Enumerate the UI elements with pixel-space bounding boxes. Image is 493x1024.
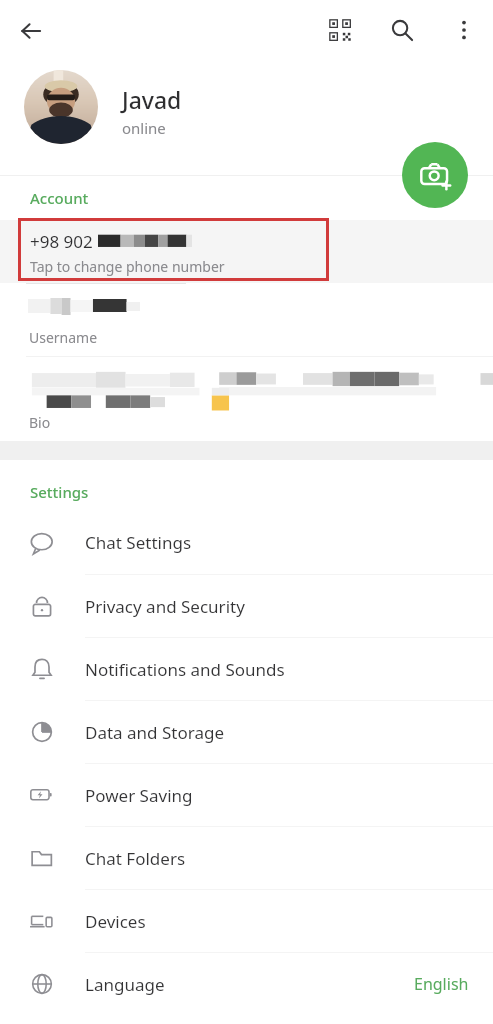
button[interactable]: Data and Storage bbox=[0, 701, 493, 763]
button[interactable]: Chat Folders bbox=[0, 827, 493, 889]
staticText: Notifications and Sounds bbox=[85, 658, 285, 681]
staticText: Chat Folders bbox=[85, 847, 186, 870]
button[interactable]: Devices bbox=[0, 890, 493, 952]
staticText: Tap to change phone number bbox=[30, 257, 225, 276]
button[interactable]: Search bbox=[380, 8, 424, 52]
staticText: Language bbox=[85, 973, 165, 996]
button[interactable]: Privacy and Security bbox=[0, 575, 493, 637]
button[interactable]: Username bbox=[0, 284, 493, 356]
button[interactable]: QR code bbox=[318, 8, 362, 52]
staticText: online bbox=[122, 118, 166, 138]
staticText: Bio bbox=[29, 413, 51, 432]
staticText: Username bbox=[29, 328, 98, 347]
staticText: Devices bbox=[85, 910, 146, 933]
staticText: Account bbox=[30, 188, 89, 208]
button[interactable]: Bio bbox=[0, 357, 493, 441]
button[interactable]: Back bbox=[10, 10, 52, 52]
staticText: Data and Storage bbox=[85, 721, 224, 744]
button[interactable]: Chat Settings bbox=[0, 511, 493, 574]
staticText: Javad bbox=[122, 84, 182, 115]
staticText: English bbox=[414, 973, 469, 995]
button[interactable]: Power Saving bbox=[0, 764, 493, 826]
button[interactable]: Set profile photo bbox=[402, 142, 468, 208]
staticText: +98 902 bbox=[30, 230, 98, 253]
button[interactable]: Notifications and Sounds bbox=[0, 638, 493, 700]
button[interactable]: Profile photo bbox=[24, 70, 98, 144]
staticText: Privacy and Security bbox=[85, 595, 245, 618]
staticText: Chat Settings bbox=[85, 531, 192, 554]
button[interactable]: More options bbox=[442, 8, 486, 52]
staticText: Settings bbox=[30, 482, 89, 502]
button[interactable]: +98 902 bbox=[0, 220, 493, 283]
staticText: Power Saving bbox=[85, 784, 193, 807]
button[interactable]: Language bbox=[0, 953, 493, 1015]
